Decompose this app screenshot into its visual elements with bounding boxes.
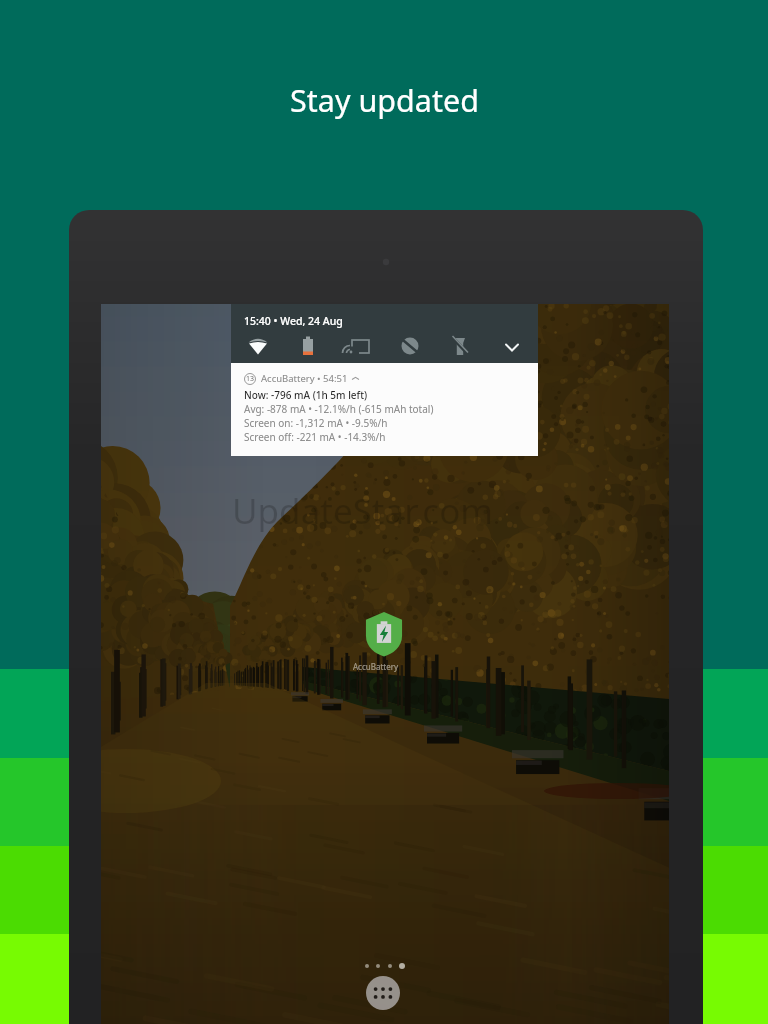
staticText: Screen on: -1,312 mA • -9.5%/h: [244, 416, 388, 430]
button[interactable]: AccuBattery: [363, 610, 405, 657]
staticText: Screen off: -221 mA • -14.3%/h: [244, 430, 386, 444]
staticText: Stay updated: [290, 79, 479, 121]
button[interactable]: All apps: [366, 976, 400, 1010]
staticText: 13: [246, 374, 255, 384]
button[interactable]: 13: [231, 363, 538, 456]
staticText: Avg: -878 mA • -12.1%/h (-615 mAh total): [244, 402, 434, 416]
staticText: 15:40 • Wed, 24 Aug: [244, 314, 343, 328]
staticText: AccuBattery • 54:51: [261, 372, 348, 385]
staticText: UpdateStar.com: [232, 487, 494, 535]
staticText: Now: -796 mA (1h 5m left): [244, 388, 368, 402]
staticText: AccuBattery: [353, 661, 399, 672]
